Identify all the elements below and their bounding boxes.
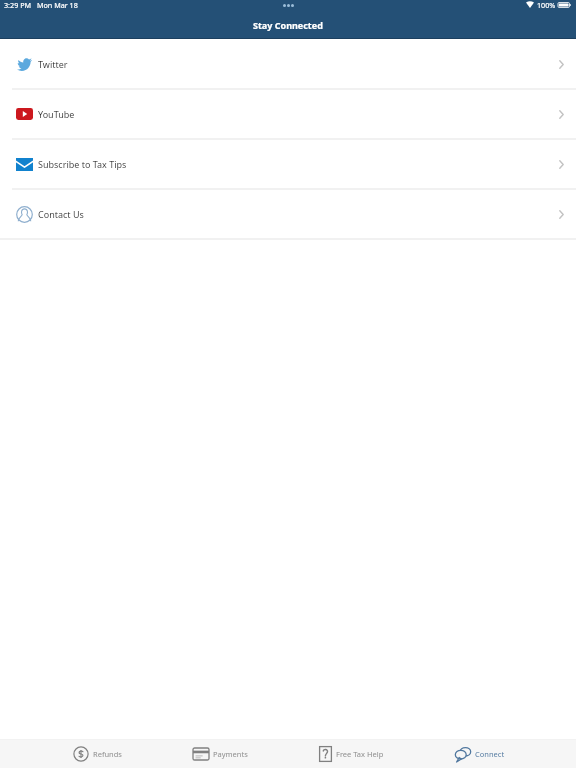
staticText: Mon Mar 18	[37, 0, 78, 10]
staticText: YouTube	[38, 108, 75, 120]
button[interactable]: YouTube	[0, 90, 576, 140]
staticText: Subscribe to Tax Tips	[38, 158, 127, 170]
button[interactable]: Refunds	[73, 740, 122, 768]
staticText: Stay Connected	[253, 19, 323, 31]
staticText: Free Tax Help	[336, 749, 384, 759]
staticText: Connect	[475, 749, 505, 759]
button[interactable]: Contact Us	[0, 190, 576, 240]
button[interactable]: Payments	[193, 740, 248, 768]
button[interactable]: Connect	[455, 740, 505, 768]
staticText: Payments	[213, 749, 248, 759]
button[interactable]: Subscribe to Tax Tips	[0, 140, 576, 190]
staticText: Refunds	[93, 749, 122, 759]
staticText: 3:29 PM	[4, 0, 31, 10]
button[interactable]: Twitter	[0, 40, 576, 90]
button[interactable]: Free Tax Help	[319, 740, 384, 768]
staticText: Twitter	[38, 58, 68, 70]
staticText: Contact Us	[38, 208, 84, 220]
staticText: 100%	[537, 0, 556, 10]
